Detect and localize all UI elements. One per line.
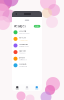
button[interactable]: Settings <box>32 85 41 91</box>
staticText: New mockups <box>19 46 29 47</box>
button[interactable]: Ella Brown <box>12 49 42 55</box>
staticText: Anna Smith <box>19 30 26 32</box>
button[interactable]: Mark Lee <box>12 36 42 42</box>
staticText: Thanks! <box>19 52 25 54</box>
button[interactable]: Online <box>34 25 40 28</box>
staticText: Sophie Kim <box>19 63 26 65</box>
staticText: See you soon! <box>19 32 29 34</box>
staticText: Messages <box>14 24 26 28</box>
button[interactable]: Anna Smith <box>12 29 42 36</box>
staticText: Call me back <box>19 59 27 61</box>
staticText: Team Design <box>19 43 28 45</box>
button[interactable]: Calls <box>22 85 31 91</box>
button[interactable]: Team Design <box>12 42 42 49</box>
staticText: Online <box>35 25 39 27</box>
staticText: Mark Lee <box>19 37 26 39</box>
staticText: John Doe <box>19 57 25 58</box>
staticText: Typing now… <box>19 39 28 41</box>
staticText: Sent a photo <box>19 65 27 67</box>
button[interactable]: Chats <box>13 85 22 91</box>
button[interactable]: John Doe <box>12 55 42 62</box>
staticText: Ella Brown <box>19 50 26 52</box>
button[interactable]: Sophie Kim <box>12 62 42 69</box>
